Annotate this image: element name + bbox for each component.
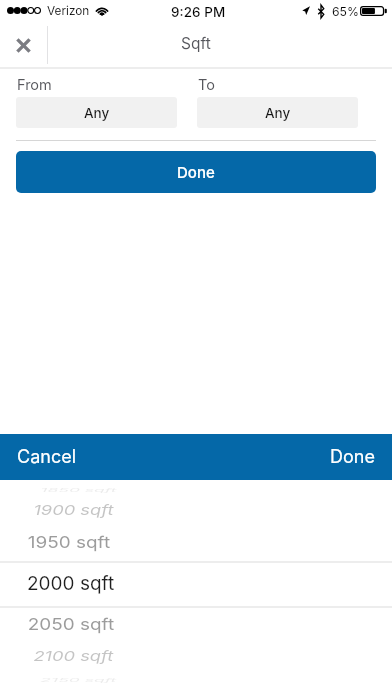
staticText: Any [84,105,110,121]
staticText: 9:26 PM [171,4,226,20]
button[interactable]: Any [197,97,358,128]
button[interactable]: Any [16,97,177,128]
staticText: 2050 sqft [28,614,114,634]
staticText: Cancel [17,446,77,468]
staticText: 1850 sqft [40,487,117,493]
staticText: To [198,76,215,94]
staticText: Sqft [181,34,211,53]
staticText: Any [265,105,291,121]
button[interactable]: Done [313,436,392,478]
staticText: 1900 sqft [33,502,114,519]
staticText: 2100 sqft [33,648,113,665]
button[interactable]: Close [0,24,47,66]
staticText: From [17,76,52,94]
staticText: 2000 sqft [27,572,115,595]
staticText: 1950 sqft [28,532,110,552]
staticText: 65% [332,4,359,19]
button[interactable]: Cancel [0,436,94,478]
staticText: 2150 sqft [40,677,117,683]
staticText: Done [177,163,215,181]
staticText: Done [330,446,375,468]
button[interactable]: Done [16,151,376,193]
staticText: Verizon [47,4,90,18]
